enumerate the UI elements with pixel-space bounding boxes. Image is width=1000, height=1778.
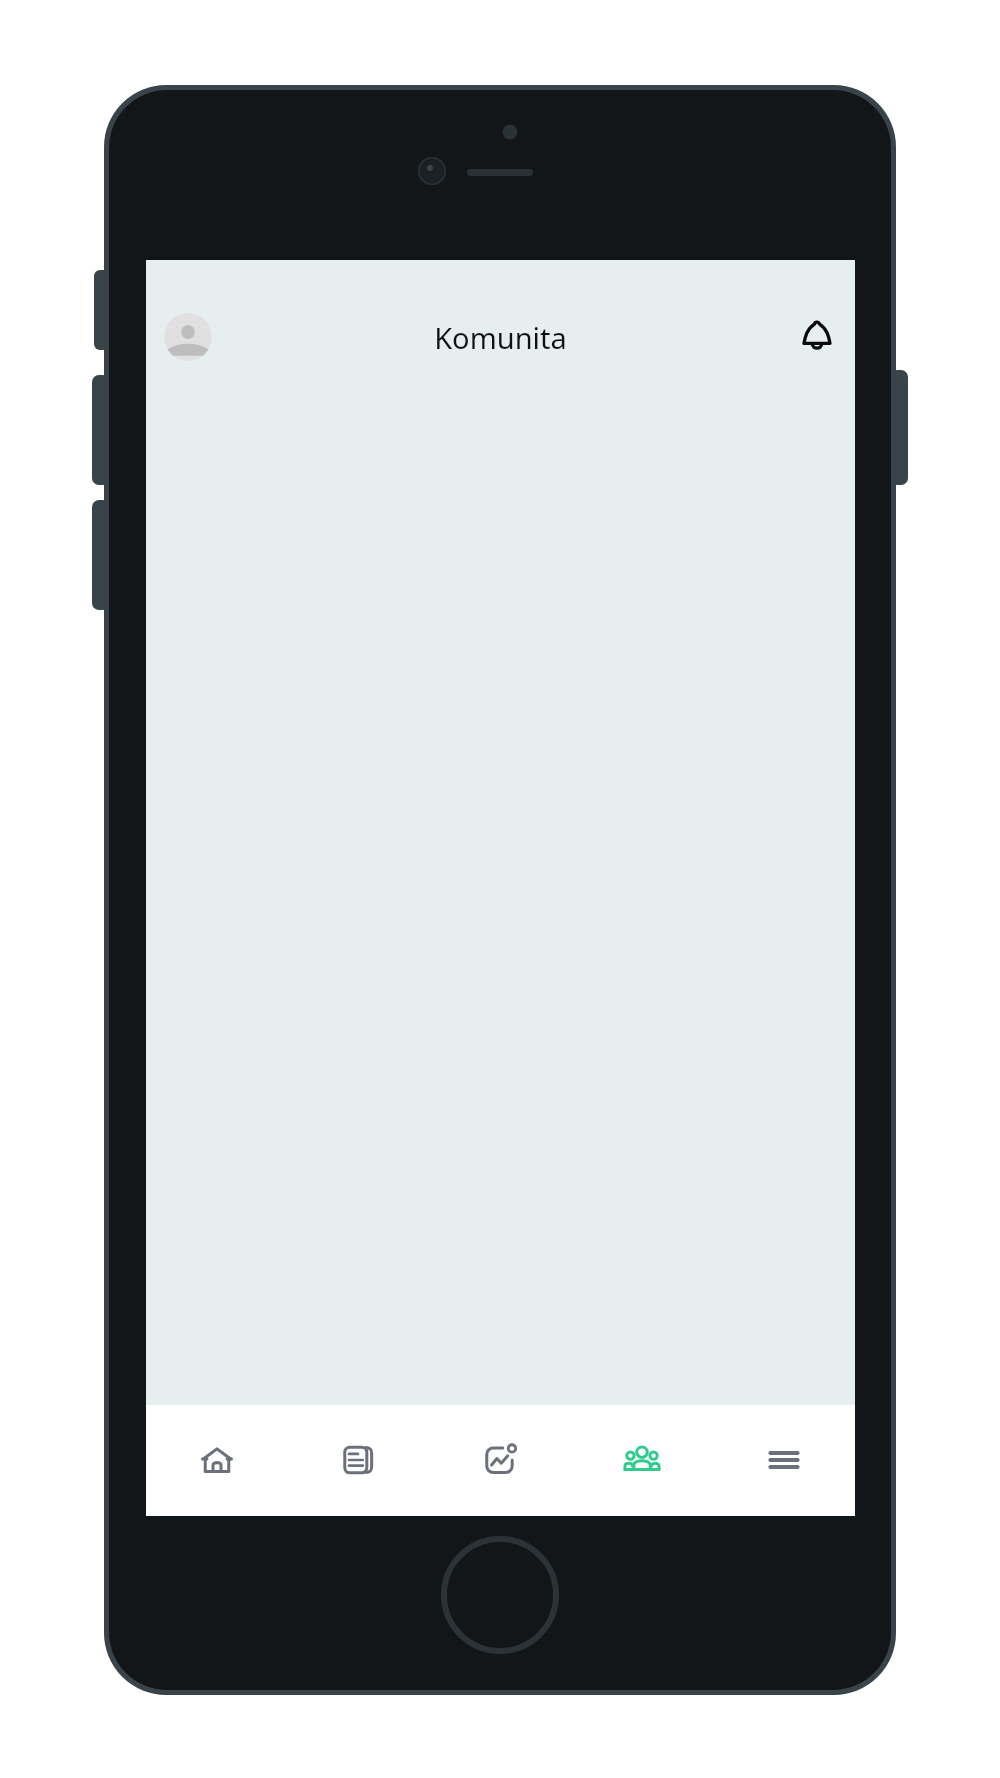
button[interactable]: News	[287, 1405, 429, 1516]
button[interactable]: Menu	[713, 1405, 855, 1516]
button[interactable]: Home	[146, 1405, 287, 1516]
button[interactable]: Statistics	[429, 1405, 571, 1516]
button[interactable]: Notifications	[791, 311, 843, 363]
button[interactable]: Profile	[164, 313, 212, 361]
staticText: Komunita	[146, 318, 855, 357]
button[interactable]: Community	[571, 1405, 713, 1516]
